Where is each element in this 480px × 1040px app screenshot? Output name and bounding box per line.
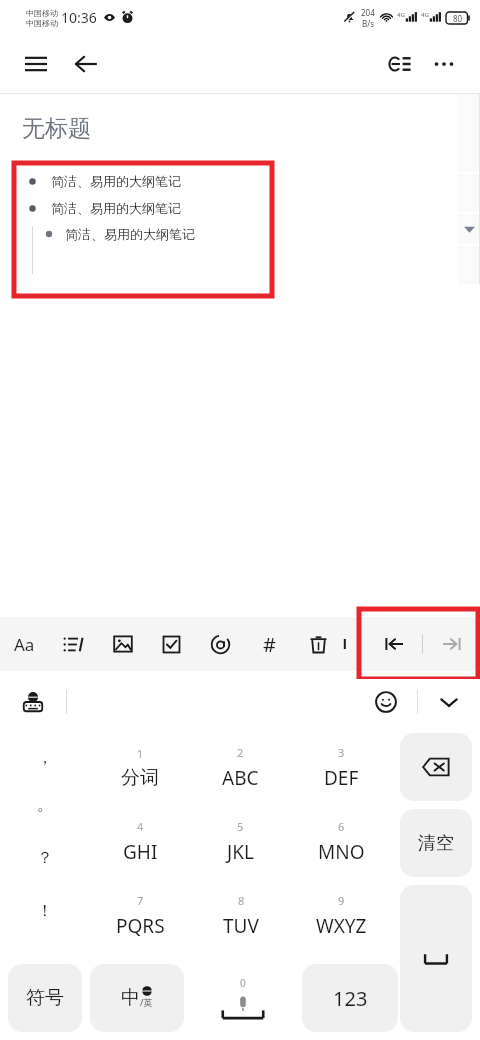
staticText: 1 <box>137 746 144 761</box>
staticText: B/s <box>362 18 375 29</box>
staticText: 9 <box>338 893 345 908</box>
staticText: 80 <box>453 13 463 24</box>
staticText: 4G <box>397 11 405 19</box>
staticText: 204 <box>361 7 375 18</box>
button[interactable]: Input method <box>0 679 66 725</box>
button[interactable]: Indent <box>423 617 480 671</box>
staticText: 10:36 <box>61 8 97 27</box>
staticText: 中国移动 <box>26 8 58 18</box>
button[interactable]: 。 <box>0 778 90 831</box>
button[interactable]: Enter <box>400 885 472 1032</box>
button[interactable]: 8 <box>190 881 291 951</box>
button[interactable]: Backspace <box>400 733 472 801</box>
button[interactable]: Back <box>64 42 108 86</box>
button[interactable]: 9 <box>291 881 392 951</box>
button[interactable]: 1 <box>90 733 190 803</box>
button[interactable]: 2 <box>190 733 291 803</box>
staticText: 4G <box>421 11 429 19</box>
staticText: 分词 <box>121 766 159 790</box>
button[interactable]: list <box>49 617 98 671</box>
staticText: GHI <box>123 839 158 865</box>
button[interactable]: 4 <box>90 807 190 877</box>
staticText: 8 <box>238 893 245 908</box>
button[interactable]: trash <box>294 617 343 671</box>
staticText: 4 <box>137 819 144 834</box>
staticText: 7 <box>137 893 144 908</box>
staticText: ABC <box>222 765 259 791</box>
staticText: MNO <box>318 839 365 865</box>
staticText: 无标题 <box>22 114 91 143</box>
button[interactable]: 清空 <box>400 809 472 877</box>
button[interactable]: 7 <box>90 881 190 951</box>
button[interactable]: ， <box>0 737 90 778</box>
button[interactable]: Hide keyboard <box>418 679 480 725</box>
staticText: # <box>263 631 276 658</box>
staticText: ？ <box>37 848 53 868</box>
staticText: 简洁、易用的大纲笔记 <box>51 173 181 189</box>
staticText: /英 <box>140 996 153 1008</box>
button[interactable]: hash <box>245 617 294 671</box>
staticText: 简洁、易用的大纲笔记 <box>51 200 181 216</box>
button[interactable]: Voice input, space <box>192 964 294 1032</box>
staticText: 中 <box>121 986 140 1010</box>
button[interactable]: Outline <box>378 42 422 86</box>
staticText: 5 <box>237 819 244 834</box>
staticText: ， <box>37 748 53 768</box>
staticText: DEF <box>324 765 359 791</box>
staticText: 3 <box>338 745 345 760</box>
staticText: WXYZ <box>316 913 367 939</box>
staticText: 中国移动 <box>26 18 58 28</box>
staticText: 0 <box>240 976 246 990</box>
button[interactable]: Undo <box>343 617 365 671</box>
staticText: ！ <box>37 901 53 921</box>
staticText: 符号 <box>26 986 64 1010</box>
button[interactable]: More options <box>422 42 466 86</box>
staticText: JKL <box>227 839 254 865</box>
button[interactable]: check <box>147 617 196 671</box>
button[interactable]: Aa <box>0 617 49 671</box>
button[interactable]: ！ <box>0 884 90 937</box>
staticText: Aa <box>14 633 35 656</box>
staticText: 。 <box>37 795 53 815</box>
button[interactable]: 123 <box>302 964 398 1032</box>
staticText: PQRS <box>116 913 165 939</box>
staticText: 2 <box>237 745 244 760</box>
staticText: 简洁、易用的大纲笔记 <box>65 226 195 242</box>
button[interactable]: at <box>196 617 245 671</box>
button[interactable]: Emoji <box>355 679 417 725</box>
staticText: TUV <box>223 913 259 939</box>
staticText: 清空 <box>418 832 454 855</box>
button[interactable]: 3 <box>291 733 392 803</box>
button[interactable]: Outdent <box>365 617 422 671</box>
button[interactable]: Menu <box>14 42 58 86</box>
button[interactable]: 5 <box>190 807 291 877</box>
button[interactable]: image <box>98 617 147 671</box>
button[interactable]: 6 <box>291 807 392 877</box>
button[interactable]: 符号 <box>8 964 82 1032</box>
button[interactable]: 中 <box>90 964 184 1032</box>
staticText: 123 <box>333 985 368 1012</box>
staticText: 6 <box>338 819 345 834</box>
button[interactable]: ？ <box>0 831 90 884</box>
